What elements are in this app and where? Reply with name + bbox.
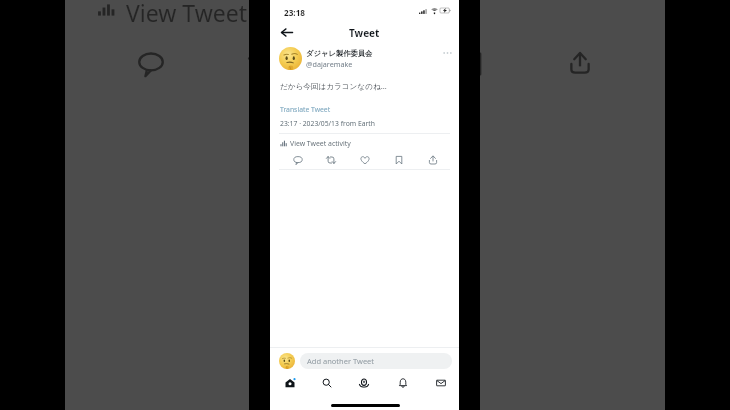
- button[interactable]: Like: [357, 152, 373, 168]
- button[interactable]: More options: [440, 46, 454, 60]
- button[interactable]: Bookmark: [391, 152, 407, 168]
- staticText: View Tweet: [126, 0, 247, 28]
- staticText: View Tweet activity: [290, 139, 351, 148]
- button[interactable]: Add another Tweet: [300, 353, 452, 369]
- button[interactable]: Search: [316, 372, 338, 394]
- button[interactable]: View Tweet activity: [280, 139, 351, 148]
- button[interactable]: Home: [279, 372, 301, 394]
- staticText: 23:18: [284, 7, 306, 18]
- button[interactable]: Back: [276, 22, 297, 43]
- staticText: ダジャレ製作委員会: [306, 49, 373, 58]
- staticText: Add another Tweet: [307, 356, 375, 366]
- staticText: だから今回はカラコンなのね…: [280, 81, 387, 91]
- button[interactable]: Notifications: [392, 372, 414, 394]
- button[interactable]: Spaces: [353, 372, 375, 394]
- staticText: 23:17 · 2023/05/13 from Earth: [280, 119, 375, 128]
- button[interactable]: Translate Tweet: [280, 105, 331, 114]
- button[interactable]: Share: [425, 152, 441, 168]
- button[interactable]: Messages: [430, 372, 452, 394]
- button[interactable]: Retweet: [323, 152, 339, 168]
- button[interactable]: Reply: [290, 152, 306, 168]
- staticText: Tweet: [349, 26, 380, 40]
- staticText: @dajaremake: [306, 59, 353, 69]
